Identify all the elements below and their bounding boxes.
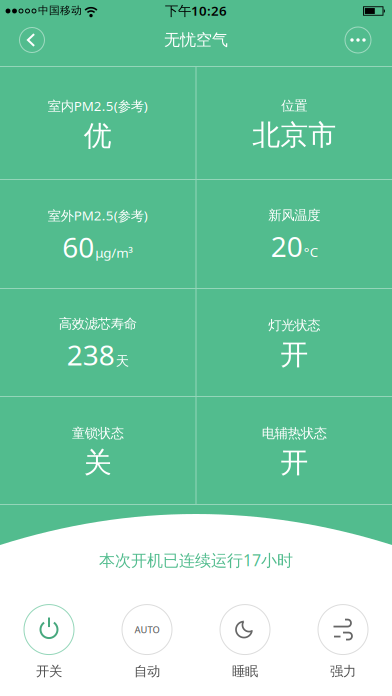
staticText: 灯光状态	[268, 317, 320, 333]
button[interactable]: AUTO	[98, 603, 196, 681]
staticText: μg/m³	[95, 244, 133, 261]
staticText: 电辅热状态	[262, 425, 327, 441]
button[interactable]: More	[336, 18, 380, 62]
staticText: 室外PM2.5(参考)	[48, 207, 148, 224]
staticText: 关	[84, 445, 112, 480]
staticText: 中国移动	[38, 4, 82, 17]
staticText: 位置	[281, 98, 307, 114]
staticText: 本次开机已连续运行17小时	[99, 549, 293, 571]
button[interactable]: 睡眠	[196, 603, 294, 681]
staticText: 室内PM2.5(参考)	[48, 97, 148, 115]
button[interactable]: 开关	[0, 603, 98, 681]
staticText: 无忧空气	[164, 30, 228, 50]
staticText: 下午10:26	[165, 2, 227, 19]
staticText: 60	[62, 228, 94, 265]
staticText: 20	[271, 228, 303, 265]
staticText: 强力	[330, 663, 356, 679]
staticText: 开关	[36, 663, 62, 679]
button[interactable]: Back	[10, 18, 54, 62]
staticText: 238	[67, 336, 115, 373]
staticText: 睡眠	[232, 663, 258, 679]
staticText: 天	[116, 353, 129, 369]
staticText: 自动	[134, 663, 160, 679]
staticText: 开	[280, 337, 308, 372]
staticText: °C	[304, 243, 318, 261]
staticText: 童锁状态	[72, 425, 124, 441]
staticText: 优	[84, 119, 112, 153]
staticText: 新风温度	[268, 207, 320, 224]
staticText: 高效滤芯寿命	[59, 316, 137, 332]
staticText: AUTO	[134, 623, 159, 636]
button[interactable]: 强力	[294, 603, 392, 681]
staticText: 北京市	[252, 118, 336, 152]
staticText: 开	[280, 445, 308, 480]
